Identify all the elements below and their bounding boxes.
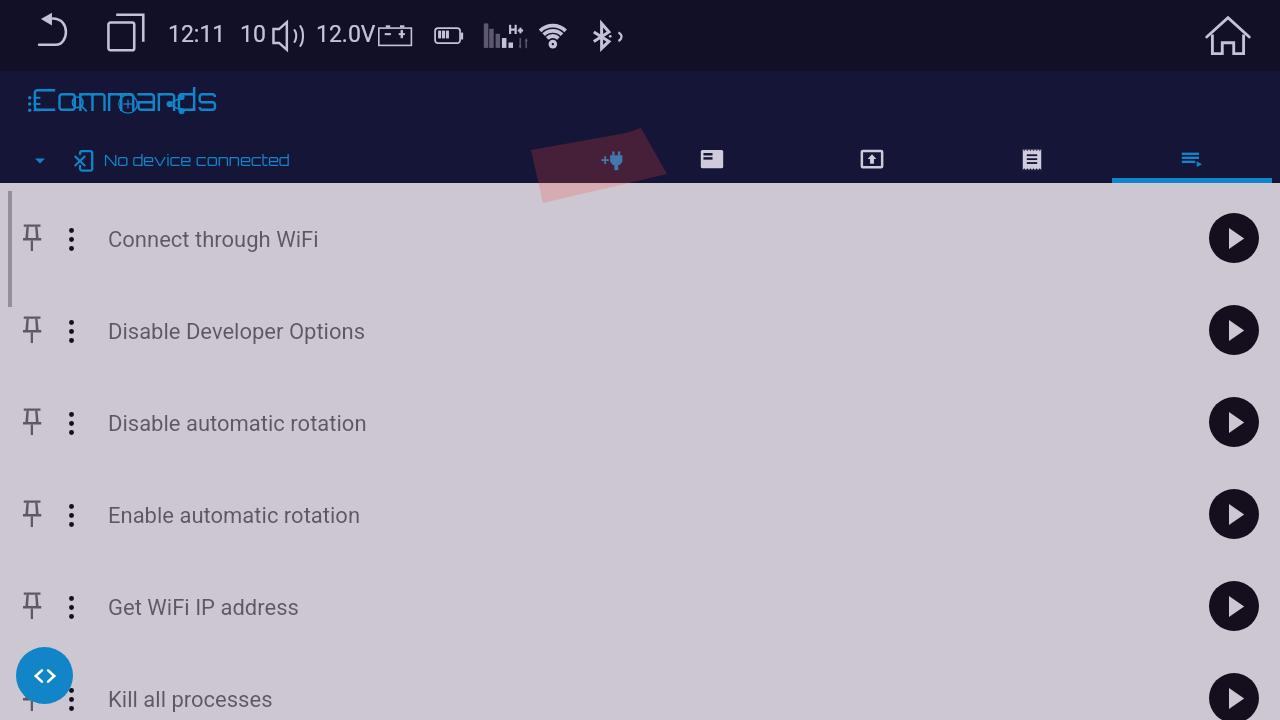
staticText: 12.0V	[316, 21, 376, 48]
button[interactable]: Run command	[1209, 581, 1259, 631]
button[interactable]: Pin command	[21, 589, 43, 620]
staticText: Disable Developer Options	[108, 319, 365, 345]
button[interactable]: Screen mirroring	[792, 71, 952, 183]
button[interactable]: Pin command	[0, 183, 1280, 275]
button[interactable]: Home	[1202, 10, 1254, 62]
button[interactable]: Pin command	[0, 367, 1280, 459]
button[interactable]: More options	[64, 227, 79, 252]
staticText: No device connected	[104, 150, 290, 170]
button[interactable]: Run shell code	[16, 647, 73, 704]
button[interactable]: More options	[64, 687, 79, 712]
button[interactable]: Pin command	[21, 681, 43, 712]
button[interactable]: Run command	[1209, 673, 1259, 720]
button[interactable]: No device connected	[20, 143, 310, 181]
button[interactable]: Pin command	[21, 405, 43, 436]
button[interactable]: Commands	[1112, 71, 1272, 183]
button[interactable]: Pin command	[0, 459, 1280, 551]
staticText: Enable automatic rotation	[108, 503, 361, 529]
button[interactable]: Run command	[1209, 213, 1259, 263]
button[interactable]: More options	[64, 595, 79, 620]
button[interactable]: Menu	[28, 96, 48, 112]
button[interactable]: Run command	[1209, 305, 1259, 355]
button[interactable]: Pin command	[21, 497, 43, 528]
button[interactable]: Device info	[632, 71, 792, 183]
button[interactable]: Logcat	[952, 71, 1112, 183]
staticText: Connect through WiFi	[108, 227, 319, 253]
button[interactable]: More options	[64, 319, 79, 344]
button[interactable]: More options	[64, 503, 79, 528]
staticText: 12:11	[168, 21, 226, 48]
button[interactable]: Run command	[1209, 489, 1259, 539]
button[interactable]: Pin command	[0, 643, 1280, 720]
button[interactable]: Pin command	[21, 313, 43, 344]
staticText: 10	[240, 21, 266, 48]
button[interactable]: Pin command	[0, 275, 1280, 367]
staticText: Commands	[32, 81, 218, 119]
staticText: Kill all processes	[108, 687, 273, 713]
button[interactable]: Add command	[118, 94, 138, 114]
button[interactable]: Share	[166, 94, 186, 114]
staticText: Get WiFi IP address	[108, 595, 299, 621]
button[interactable]: Recents	[105, 9, 148, 57]
button[interactable]: Add device	[532, 71, 692, 183]
button[interactable]: Pin command	[21, 221, 43, 252]
button[interactable]: More options	[64, 411, 79, 436]
button[interactable]: Back	[36, 12, 74, 53]
button[interactable]: Run command	[1209, 397, 1259, 447]
button[interactable]: Search	[70, 95, 90, 115]
button[interactable]: Pin command	[0, 551, 1280, 643]
staticText: Disable automatic rotation	[108, 411, 367, 437]
